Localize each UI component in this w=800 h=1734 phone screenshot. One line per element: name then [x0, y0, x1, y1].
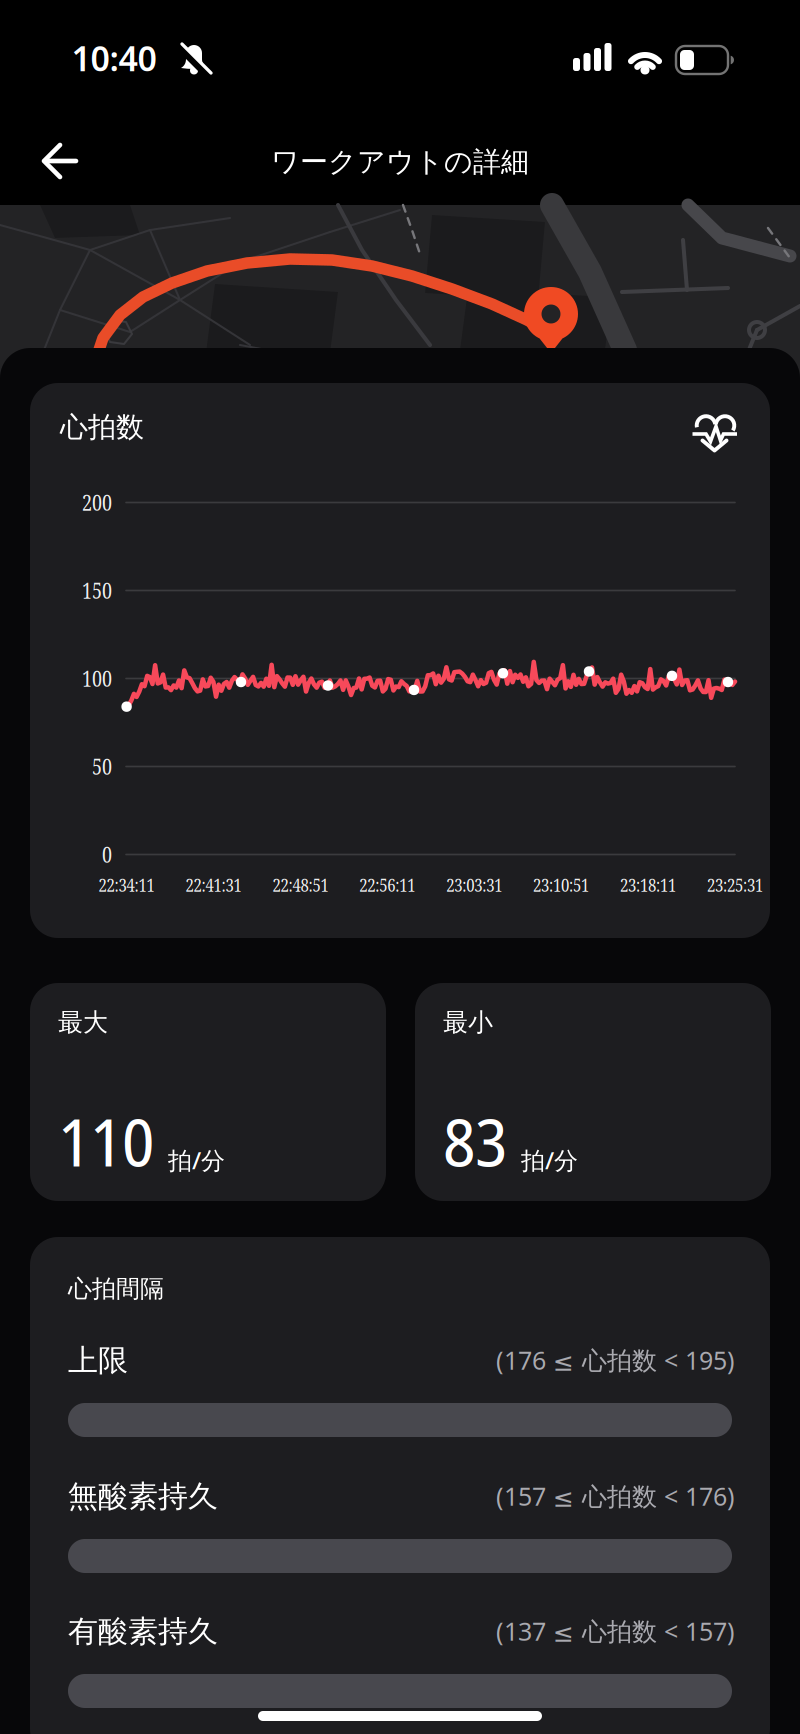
staticText: 心拍間隔 [68, 1274, 164, 1303]
staticText: 0 [102, 840, 112, 869]
staticText: 最小 [443, 1007, 493, 1038]
staticText: (137 ≤ 心拍数 < 157) [496, 1614, 735, 1648]
staticText: 200 [82, 488, 112, 517]
staticText: 50 [92, 752, 112, 781]
staticText: (176 ≤ 心拍数 < 195) [496, 1343, 735, 1377]
staticText: 拍/分 [521, 1144, 578, 1176]
staticText: 23:10:51 [533, 873, 589, 897]
staticText: 83 [443, 1096, 507, 1186]
staticText: 22:48:51 [272, 873, 328, 897]
staticText: 23:18:11 [620, 873, 676, 897]
staticText: 110 [58, 1096, 154, 1186]
staticText: 23:03:31 [446, 873, 502, 897]
staticText: ワークアウトの詳細 [271, 145, 529, 179]
staticText: 100 [82, 664, 112, 693]
staticText: 最大 [58, 1007, 108, 1038]
staticText: 心拍数 [60, 410, 144, 444]
staticText: 拍/分 [168, 1144, 225, 1176]
staticText: 有酸素持久 [68, 1613, 218, 1650]
staticText: 22:34:11 [99, 873, 155, 897]
staticText: 150 [82, 576, 112, 605]
staticText: (157 ≤ 心拍数 < 176) [496, 1479, 735, 1513]
button[interactable]: Back [30, 141, 94, 185]
staticText: 10:40 [71, 35, 156, 81]
staticText: 22:41:31 [185, 873, 241, 897]
staticText: 22:56:11 [359, 873, 415, 897]
staticText: 上限 [68, 1342, 128, 1379]
staticText: 23:25:31 [707, 873, 763, 897]
staticText: 無酸素持久 [68, 1478, 218, 1515]
